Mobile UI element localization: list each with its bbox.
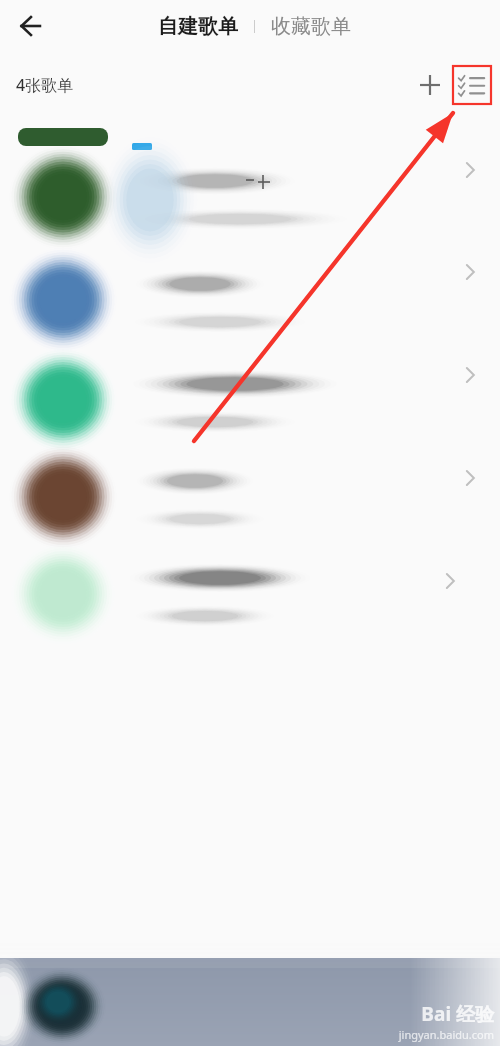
button[interactable]: Create playlist — [410, 65, 450, 105]
staticText: jingyan.baidu.com — [398, 1027, 494, 1042]
staticText: 收藏歌单 — [271, 14, 351, 39]
staticText: 自建歌单 — [158, 14, 238, 39]
button[interactable]: 收藏歌单 — [269, 14, 353, 39]
staticText: 4张歌单 — [16, 74, 74, 96]
button[interactable]: 自建歌单 — [156, 14, 240, 39]
button[interactable]: Manage playlists — [453, 66, 491, 104]
button[interactable]: Back — [6, 6, 46, 46]
staticText: Bai 经验 — [421, 1001, 494, 1027]
